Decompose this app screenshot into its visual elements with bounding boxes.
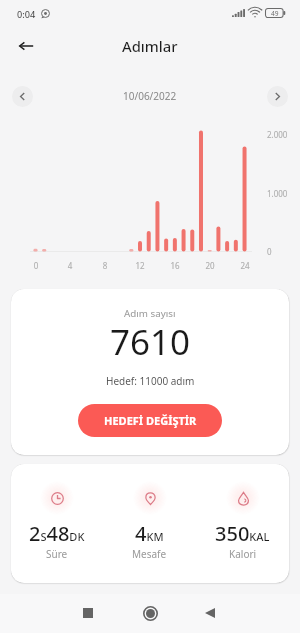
staticText: Hedef: 11000 adım — [106, 374, 195, 388]
button[interactable]: Back — [11, 31, 41, 61]
staticText: 2S48DK — [29, 520, 85, 547]
staticText: 49 — [271, 9, 279, 18]
staticText: 20 — [200, 260, 220, 271]
staticText: HEDEFİ DEĞİŞTİR — [104, 413, 197, 428]
staticText: 0 — [267, 246, 272, 257]
button[interactable]: Previous day — [12, 86, 33, 107]
button[interactable]: Recent apps — [72, 597, 104, 629]
staticText: 10/06/2022 — [123, 89, 177, 103]
button[interactable]: Home — [134, 597, 166, 629]
staticText: 4 — [60, 260, 80, 271]
staticText: Adımlar — [122, 36, 178, 56]
staticText: 24 — [235, 260, 255, 271]
staticText: 350KAL — [215, 520, 270, 547]
staticText: 7610 — [110, 318, 191, 366]
staticText: Mesafe — [132, 547, 167, 561]
button[interactable]: Back — [194, 597, 226, 629]
staticText: Adım sayısı — [124, 307, 176, 320]
staticText: 16 — [165, 260, 185, 271]
staticText: Kalori — [229, 547, 257, 561]
staticText: 2.000 — [267, 129, 288, 140]
staticText: 0 — [26, 260, 46, 271]
staticText: 1.000 — [267, 188, 288, 199]
staticText: 12 — [130, 260, 150, 271]
staticText: 0:04 — [17, 8, 36, 21]
staticText: 8 — [95, 260, 115, 271]
button[interactable]: Next day — [267, 86, 288, 107]
button[interactable]: HEDEFİ DEĞİŞTİR — [78, 404, 222, 437]
staticText: 4KM — [135, 520, 164, 547]
staticText: Süre — [46, 547, 68, 561]
